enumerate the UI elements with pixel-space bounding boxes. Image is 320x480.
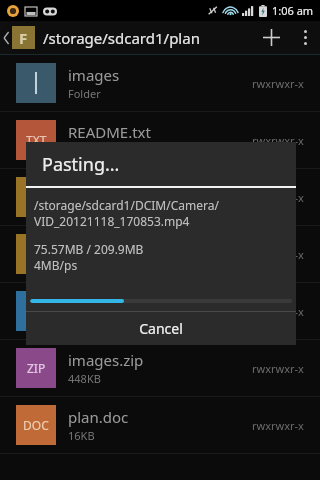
staticText: report.xls	[68, 236, 136, 256]
staticText: TXT	[26, 132, 47, 148]
staticText: images	[68, 65, 120, 85]
staticText: 88KB	[68, 200, 95, 215]
staticText: images.zip	[68, 350, 144, 370]
staticText: DOC	[23, 417, 49, 433]
staticText: 1:06 am	[272, 3, 314, 18]
button[interactable]: More options	[290, 21, 320, 54]
staticText: rwxrwxr-x	[252, 247, 304, 262]
button[interactable]: DOC	[0, 397, 320, 453]
staticText: 16KB	[68, 428, 95, 443]
staticText: 120KB	[68, 257, 101, 272]
staticText: Folder	[68, 86, 101, 101]
staticText: VID_20121118_170853.mp4	[34, 213, 190, 229]
staticText: notes.pdf	[68, 179, 136, 199]
staticText: 2KB	[68, 143, 89, 158]
staticText: clip.mp4	[68, 293, 129, 313]
staticText: Pasting...	[42, 152, 120, 177]
button[interactable]: TXT	[0, 112, 320, 168]
staticText: rwxrwxr-x	[252, 304, 304, 319]
staticText: plan.doc	[68, 407, 129, 427]
staticText: /storage/sdcard1/DCIM/Camera/	[34, 197, 219, 213]
staticText: VID	[26, 303, 47, 319]
button[interactable]: ZIP	[0, 340, 320, 396]
staticText: rwxrwxr-x	[252, 190, 304, 205]
button[interactable]: PDF	[0, 169, 320, 225]
staticText: rwxrwxr-x	[252, 133, 304, 148]
button[interactable]: images	[0, 55, 320, 111]
staticText: rwxrwxr-x	[252, 418, 304, 433]
button[interactable]: Add	[252, 21, 290, 54]
staticText: 4MB/ps	[34, 257, 78, 273]
staticText: /storage/sdcard1/plan	[43, 28, 252, 48]
button[interactable]: XLS	[0, 226, 320, 282]
staticText: PDF	[25, 189, 48, 205]
staticText: 448KB	[68, 371, 101, 386]
staticText: rwxrwxr-x	[252, 76, 304, 91]
staticText: rwxrwxr-x	[252, 361, 304, 376]
staticText: Cancel	[139, 319, 183, 338]
staticText: XLS	[26, 246, 46, 262]
button[interactable]: Cancel	[26, 312, 296, 345]
staticText: F	[19, 28, 28, 48]
button[interactable]: VID	[0, 283, 320, 339]
button[interactable]: Up	[0, 21, 37, 54]
staticText: README.txt	[68, 122, 151, 142]
staticText: 75.57MB / 209.9MB	[34, 241, 144, 257]
staticText: ZIP	[27, 360, 46, 376]
